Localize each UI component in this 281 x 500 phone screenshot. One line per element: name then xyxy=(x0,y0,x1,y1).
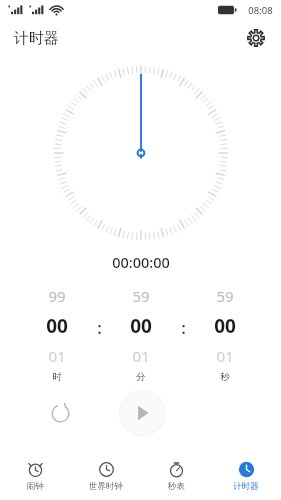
staticText: 01 xyxy=(216,346,234,366)
button[interactable]: 世界时钟 xyxy=(71,456,141,500)
staticText: 秒 xyxy=(220,371,230,383)
staticText: 08:08 xyxy=(248,4,273,17)
staticText: 闹钟 xyxy=(27,481,44,492)
staticText: 分 xyxy=(136,371,146,383)
button[interactable]: 闹钟 xyxy=(0,456,71,500)
staticText: 时 xyxy=(52,371,62,383)
staticText: 00 xyxy=(214,313,236,339)
staticText: 世界时钟 xyxy=(89,481,123,492)
button[interactable]: 99 xyxy=(22,286,91,383)
button[interactable]: 59 xyxy=(191,286,259,383)
staticText: : xyxy=(97,316,102,339)
staticText: 00 xyxy=(46,313,68,339)
staticText: : xyxy=(181,316,186,339)
button[interactable]: 计时器 xyxy=(211,456,281,500)
staticText: 00 xyxy=(130,313,152,339)
button[interactable]: Reset xyxy=(44,397,76,429)
staticText: 99 xyxy=(48,286,66,306)
staticText: 59 xyxy=(216,286,234,306)
staticText: 计时器 xyxy=(14,29,59,48)
button[interactable]: Start xyxy=(119,390,165,436)
staticText: 01 xyxy=(132,346,150,366)
staticText: 计时器 xyxy=(233,481,259,492)
button[interactable]: Settings xyxy=(241,23,271,53)
staticText: 秒表 xyxy=(168,481,185,492)
button[interactable]: 59 xyxy=(107,286,175,383)
staticText: 00:00:00 xyxy=(112,252,170,272)
staticText: 59 xyxy=(132,286,150,306)
staticText: 01 xyxy=(48,346,66,366)
button[interactable]: 秒表 xyxy=(141,456,211,500)
